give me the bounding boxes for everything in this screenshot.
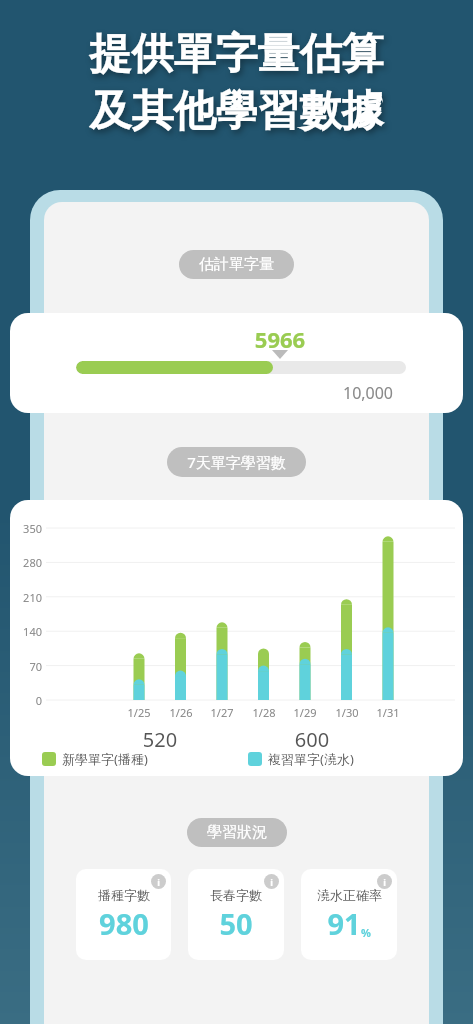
staticText: 0 bbox=[12, 693, 42, 708]
staticText: 澆水正確率 bbox=[317, 887, 382, 903]
staticText: 10,000 bbox=[328, 382, 408, 404]
button[interactable]: 學習狀況 bbox=[187, 818, 287, 847]
staticText: i bbox=[383, 876, 386, 888]
button[interactable]: Info bbox=[301, 869, 397, 960]
staticText: 估計單字量 bbox=[199, 255, 274, 274]
staticText: 及其他學習數據 bbox=[0, 85, 473, 138]
staticText: 1/28 bbox=[244, 705, 284, 720]
staticText: 1/26 bbox=[161, 705, 201, 720]
button[interactable]: 7天單字學習數 bbox=[167, 447, 306, 477]
staticText: 7天單字學習數 bbox=[187, 452, 286, 472]
staticText: 1/31 bbox=[368, 705, 408, 720]
button[interactable]: Info bbox=[377, 874, 392, 889]
staticText: 學習狀況 bbox=[207, 823, 267, 842]
staticText: % bbox=[361, 925, 371, 940]
staticText: 1/25 bbox=[119, 705, 159, 720]
staticText: 長春字數 bbox=[210, 887, 262, 903]
staticText: 播種字數 bbox=[98, 887, 150, 903]
staticText: 新學單字(播種) bbox=[62, 750, 148, 768]
staticText: 5966 bbox=[240, 324, 320, 354]
staticText: 91 bbox=[327, 904, 361, 943]
button[interactable]: 350 bbox=[10, 500, 463, 776]
staticText: 980 bbox=[99, 904, 149, 943]
staticText: 複習單字(澆水) bbox=[268, 750, 354, 768]
button[interactable]: 估計單字量 bbox=[179, 250, 294, 279]
button[interactable]: Info bbox=[76, 869, 171, 960]
staticText: 1/30 bbox=[327, 705, 367, 720]
staticText: 1/29 bbox=[285, 705, 325, 720]
staticText: 提供單字量估算 bbox=[0, 28, 473, 81]
button[interactable]: Info bbox=[151, 874, 166, 889]
button[interactable]: Info bbox=[264, 874, 279, 889]
staticText: 1/27 bbox=[202, 705, 242, 720]
staticText: 600 bbox=[282, 726, 342, 753]
staticText: 280 bbox=[12, 555, 42, 570]
staticText: 140 bbox=[12, 624, 42, 639]
staticText: 520 bbox=[130, 726, 190, 753]
staticText: 210 bbox=[12, 590, 42, 605]
button[interactable]: Info bbox=[188, 869, 284, 960]
button[interactable]: 5966 bbox=[10, 313, 463, 413]
staticText: 50 bbox=[219, 904, 253, 943]
staticText: 350 bbox=[12, 521, 42, 536]
staticText: 70 bbox=[12, 659, 42, 674]
staticText: i bbox=[270, 876, 273, 888]
staticText: i bbox=[157, 876, 160, 888]
